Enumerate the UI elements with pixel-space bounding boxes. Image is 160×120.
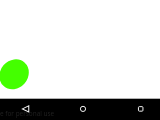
button[interactable]: Recent apps [131,99,151,120]
staticText: e for personal use [0,109,55,118]
button[interactable]: Home [73,99,93,120]
button[interactable]: Back [16,99,36,120]
